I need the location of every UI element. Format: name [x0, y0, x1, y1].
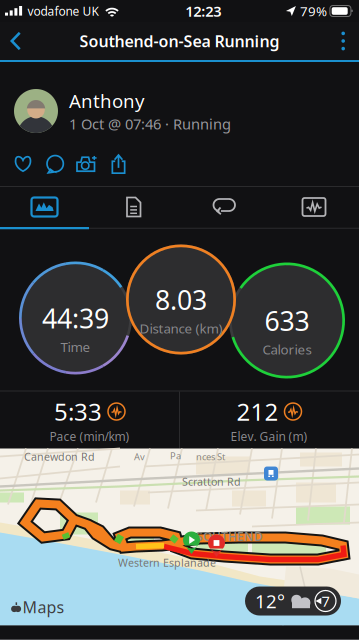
staticText: 633 [264, 303, 309, 338]
staticText: Scratton Rd [182, 474, 241, 489]
staticText: 8.03 [155, 282, 207, 317]
staticText: SOUTHEND [196, 528, 263, 544]
button[interactable]: Like [7, 151, 39, 177]
staticText: Canewdon Rd [24, 449, 95, 464]
button[interactable]: Laps [179, 187, 269, 227]
staticText: Elev. Gain (m) [230, 428, 307, 444]
button[interactable]: Analysis [269, 187, 359, 227]
staticText: 44:39 [42, 300, 109, 336]
staticText: 79% [300, 2, 327, 20]
staticText: vodafone UK [27, 3, 98, 19]
button[interactable]: Overview [0, 187, 89, 227]
staticText: Western Esplanade [118, 555, 216, 570]
button[interactable]: More options [326, 22, 359, 60]
staticText: 5:33 [54, 396, 102, 427]
staticText: Pa [170, 449, 181, 462]
staticText: Distance (km) [139, 319, 222, 337]
button[interactable]: Share [103, 151, 134, 177]
staticText: 12:23 [185, 1, 221, 21]
staticText: Calories [262, 340, 311, 358]
staticText: nces St [196, 450, 225, 463]
staticText: 1 Oct @ 07:46 · Running [69, 114, 231, 134]
staticText: 12° [255, 589, 285, 613]
button[interactable]: Comment [39, 151, 70, 177]
staticText: Anthony [69, 88, 145, 113]
button[interactable]: Back [0, 22, 35, 60]
button[interactable]: Photos [70, 151, 103, 177]
staticText: Pace (min/km) [49, 428, 129, 444]
staticText: Time [60, 338, 90, 356]
staticText: 7 [321, 591, 329, 611]
button[interactable]: Splits [89, 187, 179, 227]
staticText: 212 [236, 396, 278, 427]
staticText: Av [134, 450, 145, 463]
staticText: Maps [22, 596, 64, 618]
staticText: Southend-on-Sea Running [79, 30, 279, 52]
